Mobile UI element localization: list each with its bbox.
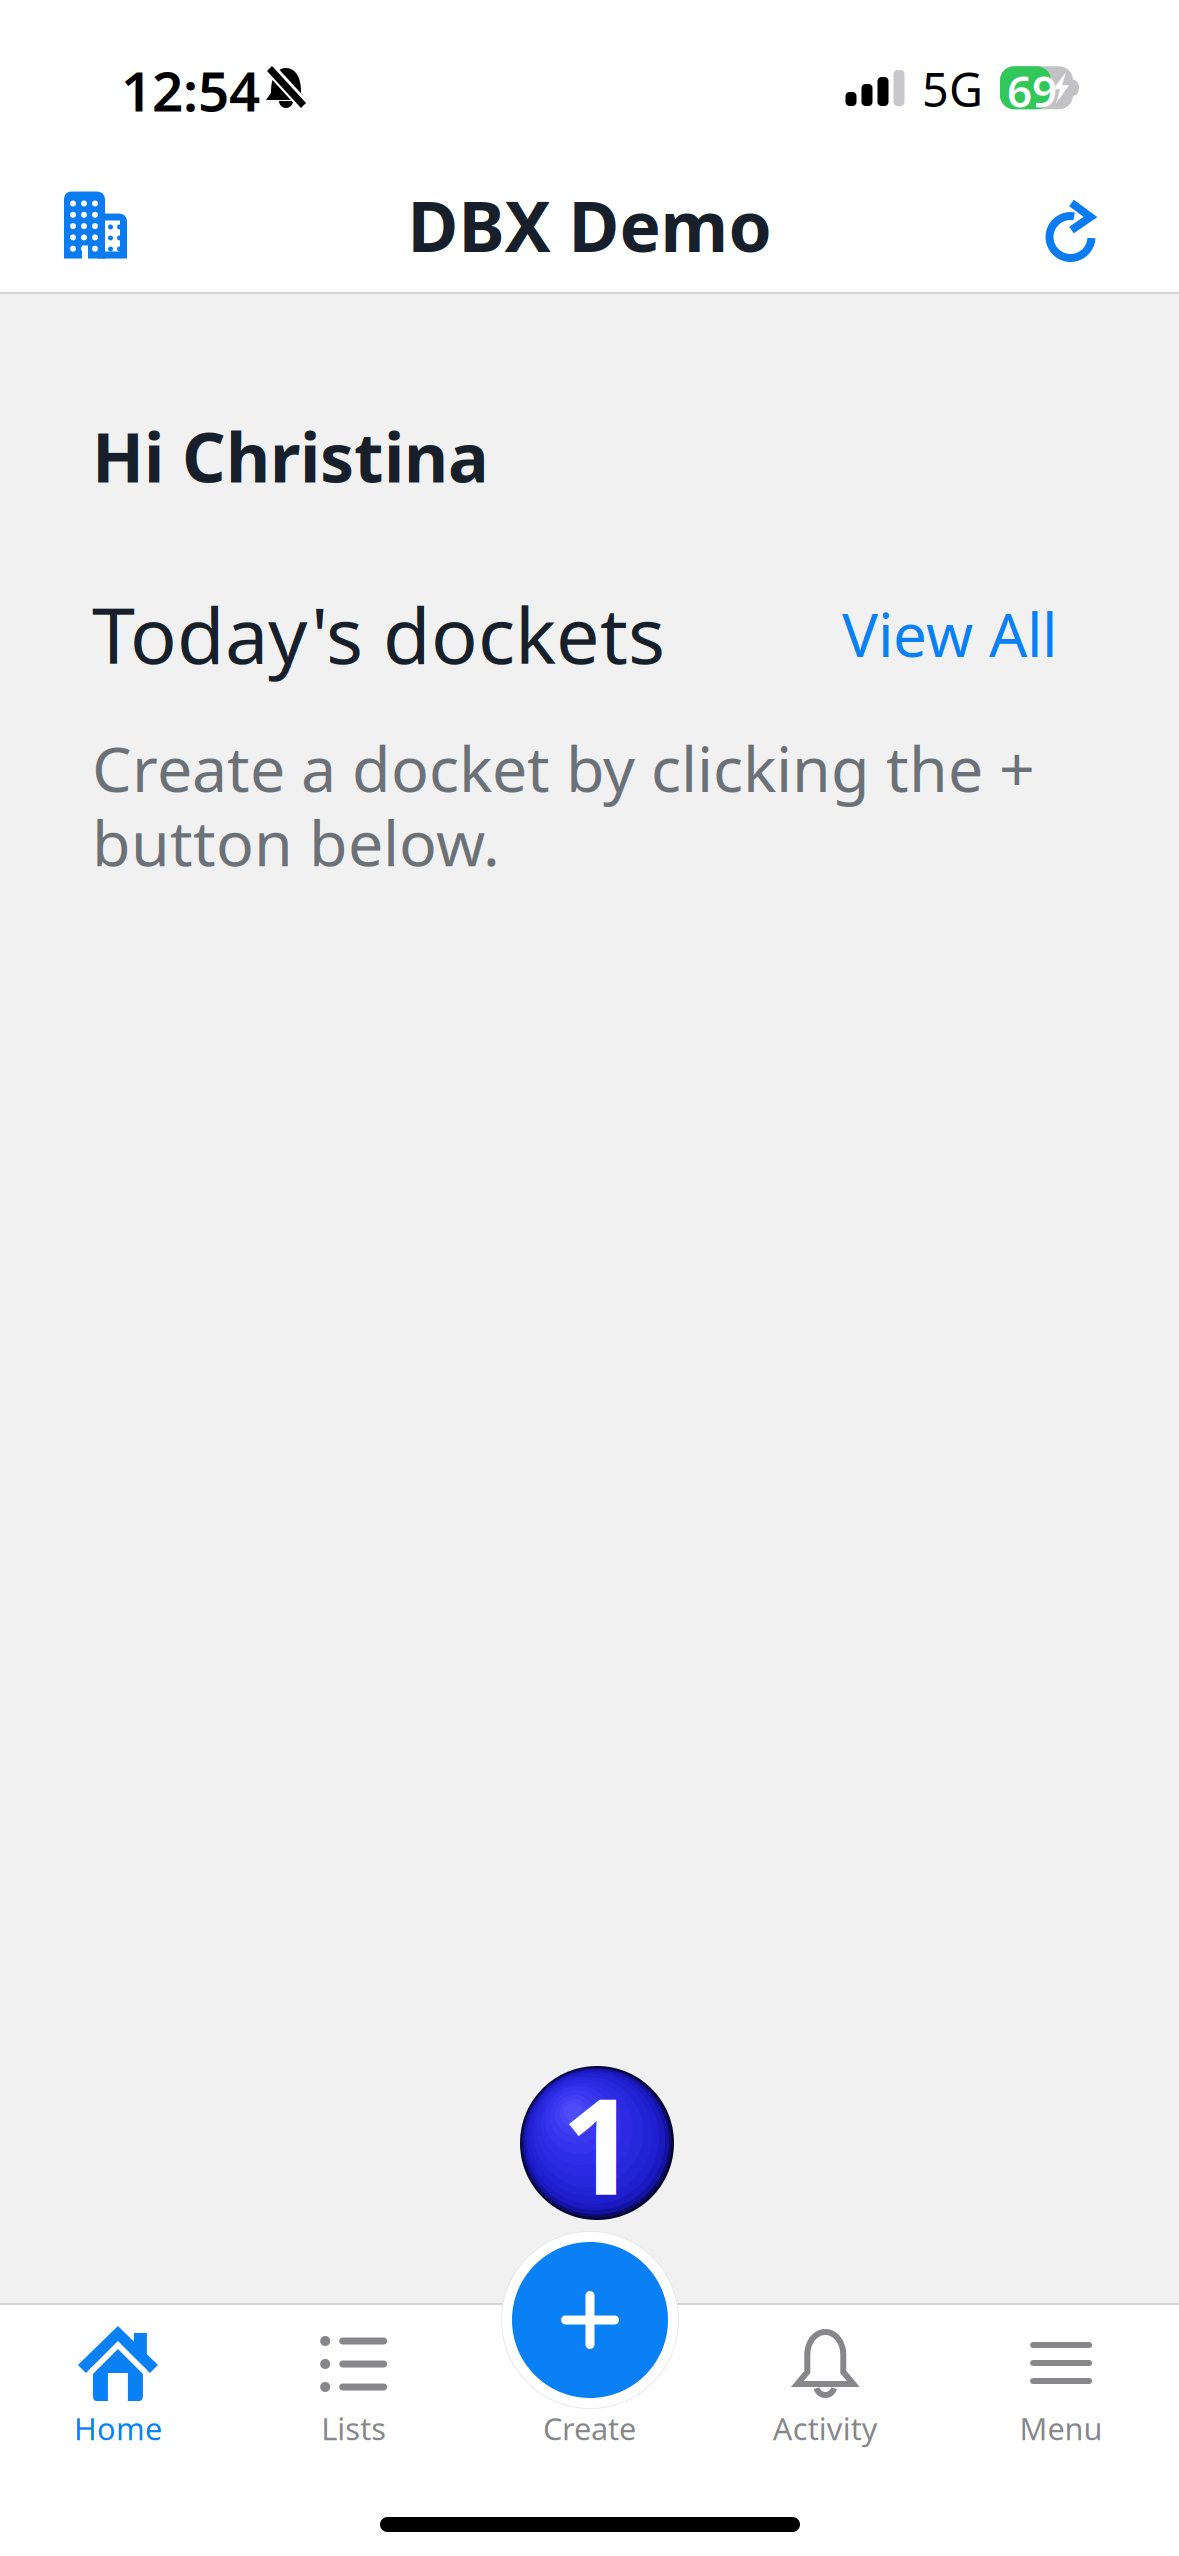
- staticText: 69: [1007, 61, 1057, 120]
- staticText: View All: [842, 594, 1057, 673]
- button[interactable]: Home: [0, 2305, 236, 2556]
- staticText: Home: [74, 2408, 162, 2449]
- button[interactable]: Menu: [943, 2305, 1179, 2556]
- staticText: Lists: [321, 2408, 386, 2449]
- staticText: Today's dockets: [92, 582, 665, 685]
- staticText: Hi Christina: [92, 411, 489, 501]
- staticText: Create a docket by clicking the + button…: [92, 726, 1035, 883]
- staticText: DBX Demo: [407, 179, 771, 271]
- button[interactable]: Company: [38, 161, 153, 287]
- button[interactable]: Activity: [707, 2305, 943, 2556]
- button[interactable]: Lists: [236, 2305, 472, 2556]
- staticText: 5G: [922, 58, 983, 120]
- button[interactable]: Create: [472, 2305, 707, 2556]
- staticText: Activity: [773, 2408, 878, 2449]
- staticText: Create: [543, 2408, 636, 2449]
- staticText: 12:54: [121, 54, 260, 127]
- button[interactable]: Refresh: [1013, 166, 1128, 292]
- button[interactable]: Create: [502, 2232, 678, 2408]
- staticText: Menu: [1020, 2408, 1103, 2449]
- staticText: 1: [561, 2054, 637, 2232]
- button[interactable]: View All: [842, 594, 1057, 673]
